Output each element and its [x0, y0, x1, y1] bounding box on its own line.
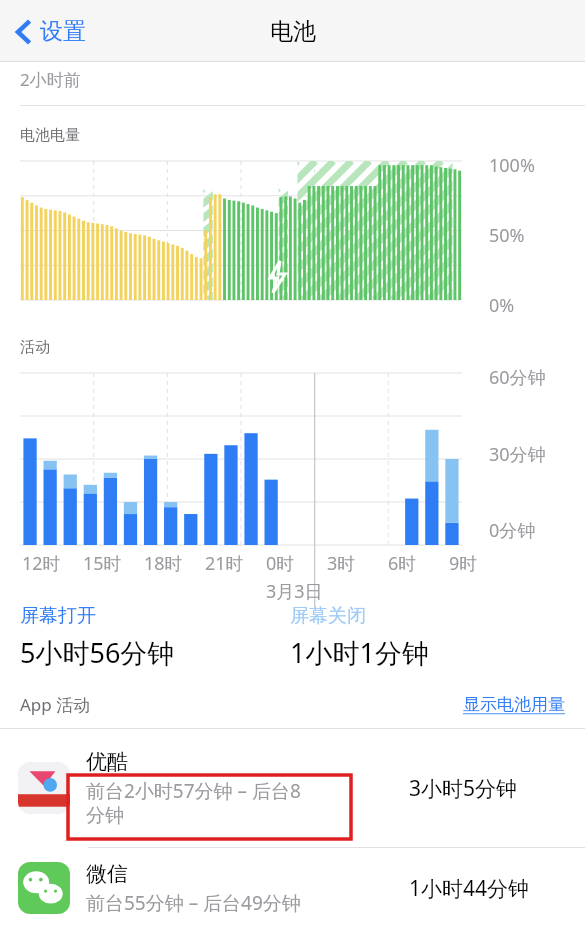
staticText: 屏幕关闭 — [290, 604, 366, 628]
staticText: 微信 — [86, 861, 128, 887]
staticText: 100% — [489, 153, 535, 178]
staticText: 60分钟 — [489, 365, 546, 390]
staticText: 3小时5分钟 — [409, 774, 569, 803]
staticText: 电池电量 — [20, 126, 80, 145]
staticText: 0时 — [266, 551, 295, 576]
staticText: 设置 — [40, 17, 86, 46]
staticText: 分钟 — [86, 804, 124, 828]
staticText: 活动 — [20, 338, 50, 357]
staticText: 18时 — [144, 551, 183, 576]
staticText: 1小时1分钟 — [290, 634, 429, 671]
staticText: 5小时56分钟 — [20, 634, 175, 671]
staticText: 6时 — [388, 551, 417, 576]
staticText: 前台2小时57分钟 – 后台8 — [86, 778, 301, 804]
button[interactable]: 屏幕关闭 — [290, 604, 429, 671]
staticText: 前台55分钟 – 后台49分钟 — [86, 890, 301, 916]
staticText: 显示电池用量 — [463, 694, 565, 715]
staticText: 3时 — [327, 551, 356, 576]
button[interactable]: 微信 — [0, 848, 585, 928]
staticText: App 活动 — [20, 693, 91, 716]
staticText: 30分钟 — [489, 442, 546, 467]
staticText: 0分钟 — [489, 518, 536, 543]
button[interactable]: 显示电池用量 — [463, 694, 565, 715]
staticText: 9时 — [449, 551, 478, 576]
staticText: 屏幕打开 — [20, 604, 96, 628]
staticText: 2小时前 — [20, 68, 81, 91]
staticText: 电池 — [270, 17, 316, 46]
button[interactable]: 屏幕打开 — [20, 604, 290, 671]
staticText: 3月3日 — [266, 579, 323, 604]
staticText: 0% — [489, 293, 515, 318]
staticText: 15时 — [83, 551, 122, 576]
staticText: 1小时44分钟 — [409, 874, 569, 903]
button[interactable]: 优酷 — [0, 729, 585, 847]
staticText: 50% — [489, 223, 525, 248]
staticText: 优酷 — [86, 749, 128, 775]
button[interactable]: 设置 — [10, 11, 92, 52]
staticText: 12时 — [22, 551, 61, 576]
staticText: 21时 — [205, 551, 244, 576]
